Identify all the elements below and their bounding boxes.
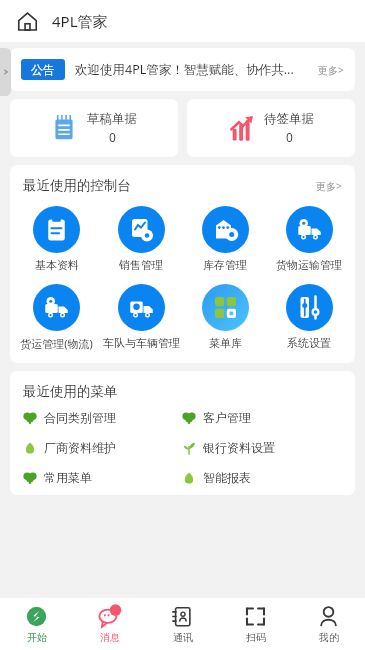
button[interactable]: 开始	[0, 598, 73, 650]
staticText: 扫码	[246, 631, 266, 644]
staticText: 车队与车辆管理	[103, 336, 180, 350]
button[interactable]: 车队与车辆管理	[99, 284, 183, 350]
button[interactable]: 待签单据	[187, 99, 355, 157]
staticText: 货运管理(物流)	[20, 336, 93, 351]
staticText: 更多>	[316, 179, 342, 193]
staticText: 系统设置	[287, 336, 331, 350]
staticText: 4PL管家	[52, 11, 108, 31]
staticText: 货物运输管理	[276, 258, 342, 272]
staticText: 库存管理	[203, 258, 247, 272]
staticText: 待签单据	[264, 111, 314, 127]
staticText: 销售管理	[119, 258, 163, 272]
button[interactable]: 基本资料	[14, 206, 99, 272]
staticText: 我的	[319, 631, 339, 644]
button[interactable]: 草稿单据	[10, 99, 178, 157]
staticText: 通讯	[173, 631, 193, 644]
staticText: 0	[286, 129, 293, 145]
staticText: 基本资料	[35, 258, 79, 272]
button[interactable]: 消息	[73, 598, 146, 650]
button[interactable]: Home	[14, 8, 40, 34]
staticText: 0	[109, 129, 116, 145]
staticText: 最近使用的控制台	[23, 177, 131, 194]
staticText: 银行资料设置	[203, 440, 275, 455]
button[interactable]: 智能报表	[182, 470, 342, 485]
button[interactable]: 系统设置	[267, 284, 351, 350]
button[interactable]: Expand panel	[0, 48, 11, 96]
button[interactable]: 厂商资料维护	[23, 440, 182, 455]
staticText: 常用菜单	[44, 470, 92, 485]
button[interactable]: 扫码	[219, 598, 292, 650]
button[interactable]: 常用菜单	[23, 470, 182, 485]
staticText: 更多>	[318, 63, 344, 77]
button[interactable]: 我的	[292, 598, 365, 650]
staticText: 智能报表	[203, 470, 251, 485]
staticText: 合同类别管理	[44, 410, 116, 425]
button[interactable]: 货物运输管理	[267, 206, 351, 272]
button[interactable]: 销售管理	[99, 206, 183, 272]
staticText: 菜单库	[209, 336, 242, 350]
button[interactable]: 客户管理	[182, 410, 342, 425]
staticText: 客户管理	[203, 410, 251, 425]
staticText: 欢迎使用4PL管家！智慧赋能、协作共...	[75, 61, 294, 78]
button[interactable]: 合同类别管理	[23, 410, 182, 425]
staticText: 厂商资料维护	[44, 440, 116, 455]
button[interactable]: 更多>	[316, 179, 342, 193]
staticText: 公告	[31, 62, 55, 77]
staticText: 最近使用的菜单	[23, 383, 118, 400]
button[interactable]: 货运管理(物流)	[14, 284, 99, 351]
staticText: 消息	[100, 631, 120, 644]
button[interactable]: 公告	[10, 48, 355, 91]
staticText: 开始	[27, 631, 47, 644]
button[interactable]: 通讯	[146, 598, 219, 650]
button[interactable]: 库存管理	[183, 206, 267, 272]
staticText: 草稿单据	[87, 111, 137, 127]
button[interactable]: 银行资料设置	[182, 440, 342, 455]
button[interactable]: 菜单库	[183, 284, 267, 350]
